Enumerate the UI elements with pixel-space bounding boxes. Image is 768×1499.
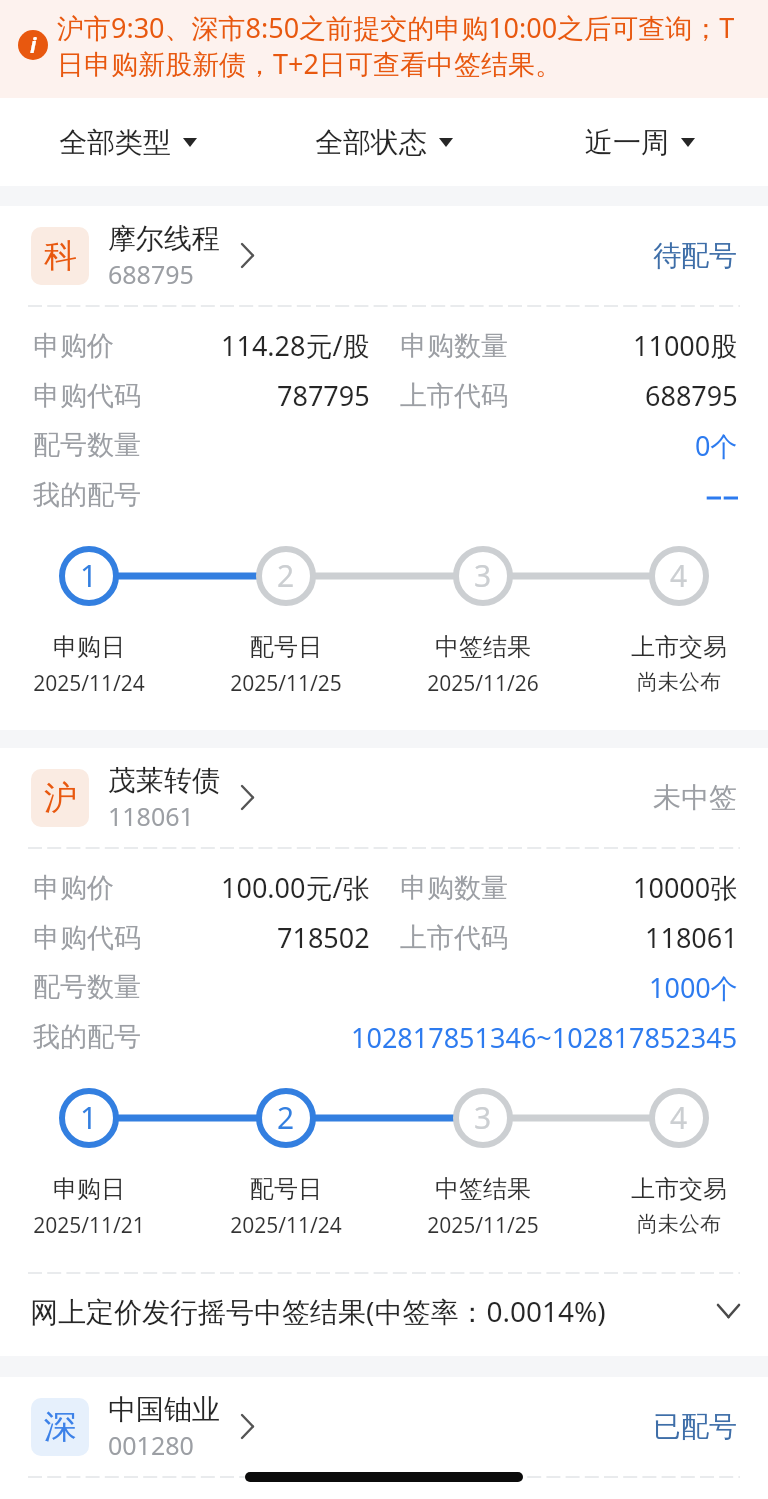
staticText: 沪市9:30、深市8:50之前提交的申购10:00之后可查询；T日申购新股新债，… — [57, 9, 750, 82]
staticText: 4 — [670, 555, 688, 595]
staticText: 配号数量 — [33, 428, 141, 462]
staticText: 中签结果 — [435, 632, 531, 662]
staticText: 2025/11/26 — [427, 669, 539, 698]
staticText: 上市交易 — [631, 1174, 727, 1204]
staticText: 申购数量 — [400, 871, 508, 905]
staticText: 未中签 — [653, 780, 737, 815]
staticText: 1 — [80, 555, 98, 595]
other: Information — [18, 30, 48, 60]
staticText: 申购日 — [53, 632, 125, 662]
staticText: 2025/11/24 — [33, 669, 145, 698]
staticText: 100.00元/张 — [221, 869, 370, 906]
staticText: 尚未公布 — [637, 1211, 721, 1237]
staticText: 全部状态 — [315, 125, 427, 160]
staticText: 摩尔线程 — [108, 221, 220, 256]
staticText: 茂莱转债 — [108, 763, 220, 798]
staticText: 上市代码 — [400, 921, 508, 955]
button[interactable]: 近一周 — [512, 98, 768, 186]
other: Expand — [717, 1304, 740, 1318]
staticText: 配号日 — [250, 632, 322, 662]
staticText: 2 — [277, 1097, 295, 1137]
staticText: 4 — [670, 1097, 688, 1137]
staticText: 我的配号 — [33, 478, 141, 512]
button[interactable]: 全部类型 — [0, 98, 256, 186]
staticText: 上市代码 — [400, 379, 508, 413]
button[interactable]: 科 — [0, 206, 768, 305]
staticText: 001280 — [108, 1428, 194, 1462]
button[interactable]: 全部状态 — [256, 98, 512, 186]
staticText: 上市交易 — [631, 632, 727, 662]
staticText: 2 — [277, 555, 295, 595]
staticText: 深 — [44, 1406, 77, 1448]
staticText: 近一周 — [585, 125, 669, 160]
staticText: 0个 — [695, 427, 738, 464]
staticText: 申购代码 — [33, 921, 141, 955]
button[interactable]: 网上定价发行摇号中签结果(中签率：0.0014%) — [0, 1274, 768, 1356]
staticText: 待配号 — [653, 238, 737, 273]
staticText: 配号数量 — [33, 970, 141, 1004]
staticText: 中签结果 — [435, 1174, 531, 1204]
staticText: 沪 — [44, 777, 77, 819]
staticText: 118061 — [645, 919, 738, 956]
staticText: 718502 — [277, 919, 370, 956]
button[interactable]: 深 — [0, 1377, 768, 1476]
staticText: 已配号 — [653, 1409, 737, 1444]
staticText: 1000个 — [649, 969, 738, 1006]
staticText: 全部类型 — [59, 125, 171, 160]
staticText: 中国铀业 — [108, 1392, 220, 1427]
staticText: 688795 — [645, 377, 738, 414]
staticText: 申购代码 — [33, 379, 141, 413]
staticText: i — [30, 31, 37, 60]
staticText: 11000股 — [633, 327, 738, 364]
staticText: 网上定价发行摇号中签结果(中签率：0.0014%) — [30, 1292, 606, 1330]
staticText: 申购价 — [33, 329, 114, 363]
staticText: 配号日 — [250, 1174, 322, 1204]
staticText: 2025/11/21 — [33, 1211, 145, 1240]
staticText: 尚未公布 — [637, 669, 721, 695]
staticText: 科 — [44, 235, 77, 277]
staticText: 118061 — [108, 799, 194, 833]
staticText: 2025/11/25 — [427, 1211, 539, 1240]
staticText: 申购数量 — [400, 329, 508, 363]
staticText: 102817851346~102817852345 — [351, 1019, 738, 1056]
staticText: 申购日 — [53, 1174, 125, 1204]
staticText: 2025/11/24 — [230, 1211, 342, 1240]
staticText: 3 — [474, 555, 492, 595]
button[interactable]: 沪 — [0, 748, 768, 847]
staticText: 10000张 — [633, 869, 738, 906]
staticText: 688795 — [108, 257, 194, 291]
staticText: 我的配号 — [33, 1020, 141, 1054]
staticText: 787795 — [277, 377, 370, 414]
staticText: 3 — [474, 1097, 492, 1137]
staticText: 2025/11/25 — [230, 669, 342, 698]
staticText: 114.28元/股 — [221, 327, 370, 364]
staticText: 申购价 — [33, 871, 114, 905]
staticText: 1 — [80, 1097, 98, 1137]
